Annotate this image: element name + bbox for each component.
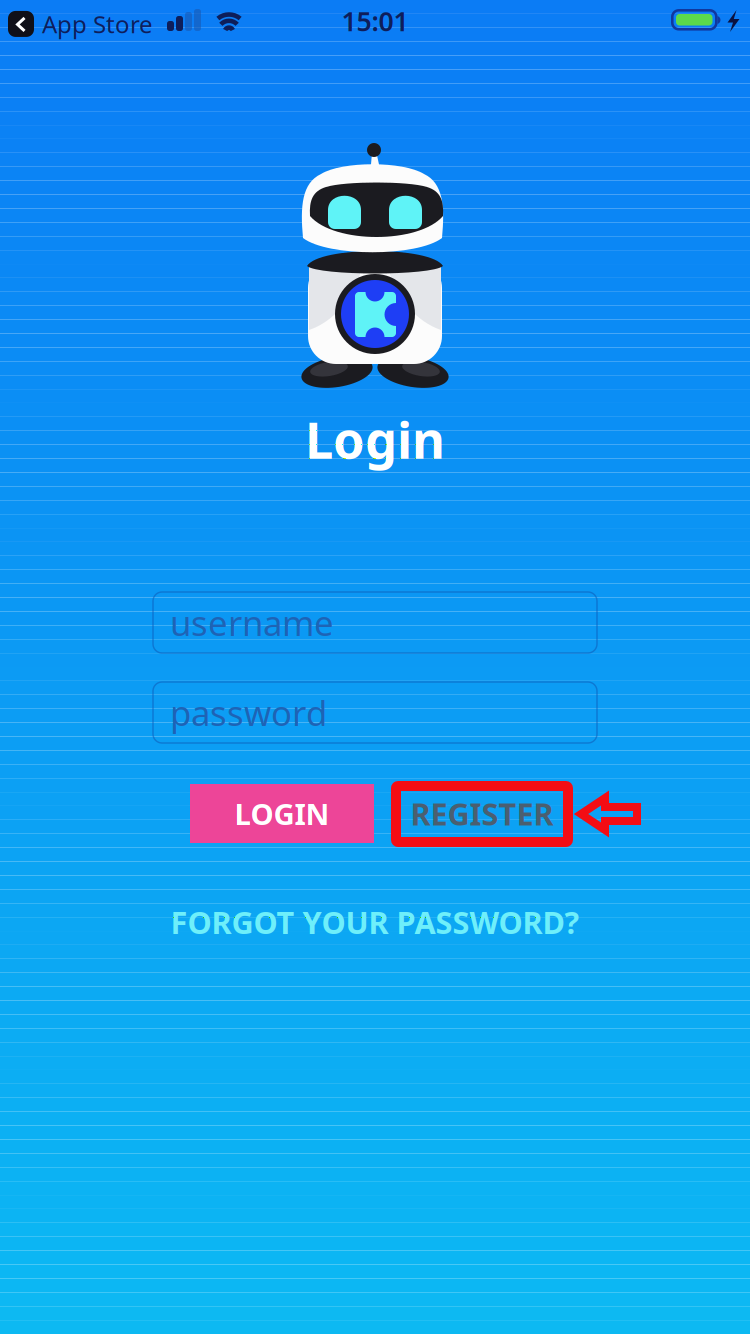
- button[interactable]: REGISTER: [397, 784, 567, 843]
- staticText: username: [170, 599, 334, 645]
- button[interactable]: LOGIN: [190, 784, 374, 843]
- staticText: REGISTER: [410, 793, 553, 834]
- staticText: 15:01: [341, 3, 408, 39]
- staticText: App Store: [42, 8, 153, 40]
- staticText: Login: [305, 405, 445, 473]
- button[interactable]: Back to App Store: [8, 5, 153, 43]
- button[interactable]: password: [153, 682, 597, 743]
- staticText: FORGOT YOUR PASSWORD?: [170, 902, 579, 942]
- button[interactable]: FORGOT YOUR PASSWORD?: [0, 900, 750, 944]
- staticText: password: [170, 689, 327, 735]
- button[interactable]: username: [153, 592, 597, 653]
- staticText: LOGIN: [234, 794, 329, 833]
